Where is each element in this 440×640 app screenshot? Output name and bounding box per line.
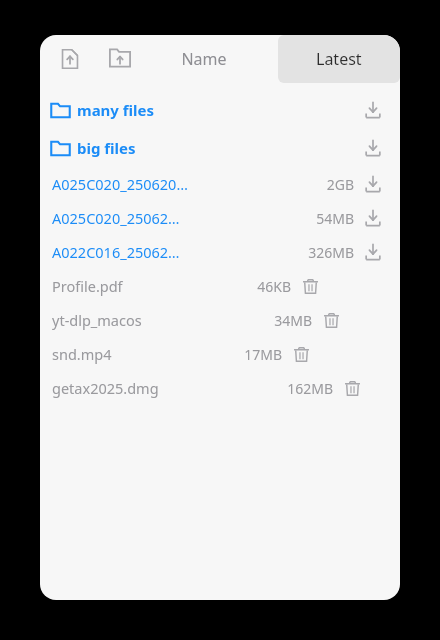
staticText: getax2025.dmg	[52, 378, 159, 398]
button[interactable]: Delete getax2025.dmg	[337, 373, 367, 403]
button[interactable]: Download big files	[358, 133, 388, 163]
button[interactable]: A022C016_250620SO_v5.mov	[40, 235, 400, 269]
button[interactable]: Profile.pdf	[40, 269, 400, 303]
staticText: 2GB	[326, 175, 354, 194]
staticText: 54MB	[316, 209, 354, 228]
button[interactable]: Name	[158, 35, 250, 83]
button[interactable]: Latest	[278, 35, 400, 83]
staticText: A022C016_250620SO_v5.mov	[52, 242, 180, 262]
staticText: Latest	[316, 48, 362, 70]
staticText: 326MB	[308, 243, 354, 262]
staticText: yt-dlp_macos	[52, 310, 142, 330]
staticText: snd.mp4	[52, 344, 112, 364]
staticText: Profile.pdf	[52, 276, 123, 296]
staticText: many files	[77, 100, 155, 120]
button[interactable]: A025C020_250620IJ v07 Flare....	[40, 167, 400, 201]
button[interactable]: Download A025C020_250620IJ v07 Flare....	[358, 169, 388, 199]
button[interactable]: Download many files	[358, 95, 388, 125]
button[interactable]: A025C020_250620IJ - CGI Matt...	[40, 201, 400, 235]
button[interactable]: Delete Profile.pdf	[295, 271, 325, 301]
staticText: 162MB	[287, 379, 333, 398]
staticText: 17MB	[244, 345, 282, 364]
button[interactable]: Delete snd.mp4	[286, 339, 316, 369]
staticText: 46KB	[257, 277, 291, 296]
button[interactable]: getax2025.dmg	[40, 371, 400, 405]
staticText: 34MB	[274, 311, 312, 330]
staticText: big files	[77, 138, 136, 158]
button[interactable]: Download A025C020_250620IJ - CGI Matt...	[358, 203, 388, 233]
staticText: A025C020_250620IJ - CGI Matt...	[52, 208, 184, 228]
button[interactable]: Download A022C016_250620SO_v5.mov	[358, 237, 388, 267]
button[interactable]: Upload file	[50, 39, 90, 79]
button[interactable]: big files	[40, 129, 400, 167]
button[interactable]: Upload folder	[100, 39, 140, 79]
staticText: Name	[181, 48, 227, 70]
button[interactable]: snd.mp4	[40, 337, 400, 371]
button[interactable]: many files	[40, 91, 400, 129]
staticText: A025C020_250620IJ v07 Flare....	[52, 174, 189, 194]
button[interactable]: Delete yt-dlp_macos	[316, 305, 346, 335]
button[interactable]: yt-dlp_macos	[40, 303, 400, 337]
